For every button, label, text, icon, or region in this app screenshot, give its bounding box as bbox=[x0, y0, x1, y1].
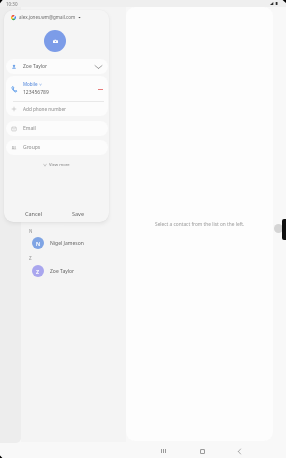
button[interactable]: Change photo bbox=[44, 30, 66, 52]
staticText: Nigel Jameson bbox=[50, 240, 84, 247]
staticText: Zoe Taylor bbox=[50, 268, 75, 275]
button[interactable]: alex.jones.wm@gmail.com bbox=[4, 10, 109, 24]
staticText: Groups bbox=[23, 144, 41, 151]
button[interactable]: N bbox=[20, 236, 126, 250]
button[interactable]: View more bbox=[41, 160, 72, 170]
staticText: Z bbox=[36, 268, 40, 275]
staticText: Z bbox=[29, 255, 32, 261]
button[interactable]: Email bbox=[6, 121, 108, 136]
button[interactable]: Groups bbox=[6, 140, 108, 155]
staticText: 123456789 bbox=[23, 89, 49, 96]
staticText: Cancel bbox=[25, 210, 43, 217]
button[interactable]: Cancel bbox=[15, 207, 53, 219]
staticText: Select a contact from the list on the le… bbox=[155, 221, 245, 228]
staticText: Zoe Taylor bbox=[23, 63, 48, 70]
staticText: N bbox=[36, 240, 41, 247]
staticText: Save bbox=[72, 210, 85, 217]
button[interactable]: Z bbox=[20, 264, 126, 278]
staticText: Add phone number bbox=[23, 106, 66, 112]
staticText: alex.jones.wm@gmail.com bbox=[19, 14, 76, 20]
button[interactable]: Remove phone number bbox=[96, 85, 104, 93]
button[interactable]: Add phone number bbox=[6, 101, 108, 116]
staticText: 10:30 bbox=[6, 1, 18, 7]
staticText: Mobile bbox=[23, 81, 38, 87]
button[interactable]: Home bbox=[194, 443, 210, 458]
button[interactable]: Edge panel bbox=[282, 219, 286, 240]
staticText: View more bbox=[49, 162, 70, 168]
button[interactable]: Zoe Taylor bbox=[6, 59, 108, 74]
staticText: Email bbox=[23, 125, 36, 132]
staticText: N bbox=[29, 228, 33, 234]
button[interactable]: Back bbox=[231, 443, 247, 458]
button[interactable]: Recents bbox=[155, 443, 171, 458]
button[interactable]: Mobile bbox=[6, 76, 108, 101]
button[interactable]: Save bbox=[62, 207, 94, 219]
